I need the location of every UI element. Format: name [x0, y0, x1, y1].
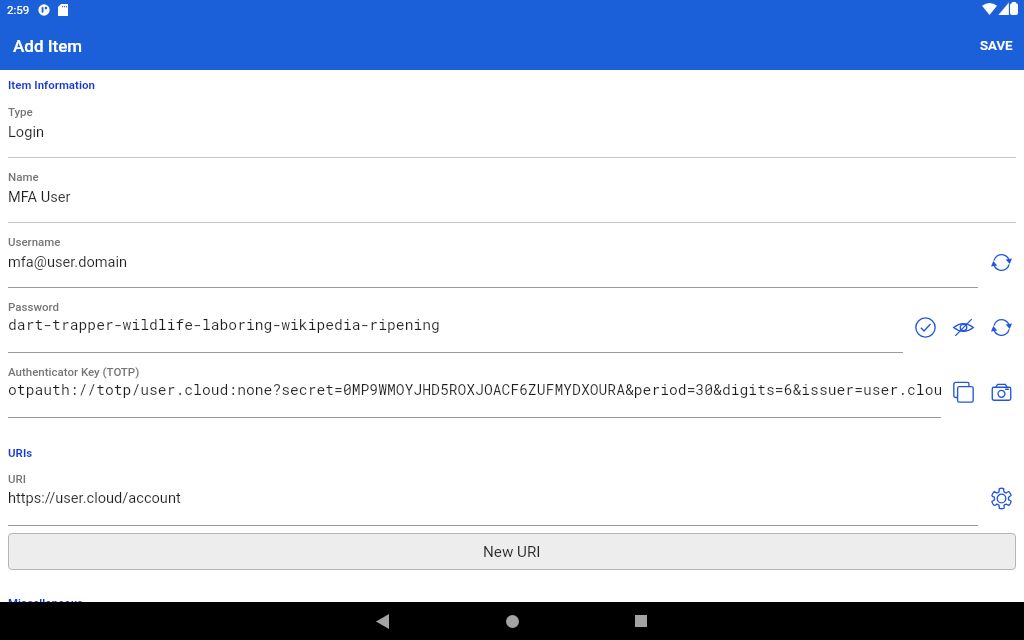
button[interactable]: Recent apps [624, 604, 658, 638]
staticText: Password [8, 300, 59, 313]
button[interactable]: URI match detection options [982, 479, 1020, 517]
staticText: Add Item [13, 36, 83, 56]
staticText: Name [8, 170, 39, 183]
button[interactable]: Toggle password visibility [944, 308, 982, 346]
staticText: Authenticator Key (TOTP) [8, 365, 140, 378]
button[interactable]: New URI [8, 533, 1016, 570]
staticText: URIs [8, 446, 33, 459]
staticText: Item Information [8, 78, 95, 91]
staticText: dart-trapper-wildlife-laboring-wikipedia… [8, 315, 440, 334]
staticText: Type [8, 105, 33, 118]
button[interactable]: Copy authenticator key [944, 373, 982, 411]
button[interactable]: SAVE [967, 22, 1024, 70]
staticText: mfa@user.domain [8, 253, 128, 270]
staticText: SAVE [980, 38, 1013, 54]
staticText: MFA User [8, 188, 71, 205]
staticText: New URI [483, 543, 541, 561]
button[interactable]: Generate username [982, 243, 1020, 281]
staticText: Miscellaneous [8, 596, 84, 609]
staticText: Username [8, 235, 61, 248]
staticText: https://user.cloud/account [8, 489, 181, 506]
button[interactable]: Scan QR code [982, 373, 1020, 411]
staticText: Login [8, 123, 44, 140]
staticText: 2:59 [7, 3, 30, 16]
button[interactable]: Back [365, 604, 399, 638]
staticText: otpauth://totp/user.cloud:none?secret=0M… [8, 380, 943, 399]
button[interactable]: Check password for breach [906, 308, 944, 346]
button[interactable]: Generate password [982, 308, 1020, 346]
button[interactable]: Home [495, 604, 529, 638]
staticText: URI [8, 472, 26, 485]
